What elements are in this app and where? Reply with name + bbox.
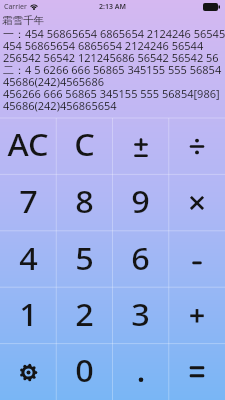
staticText: 1 [19, 294, 39, 335]
staticText: 8 [75, 181, 95, 222]
staticText: 0 [75, 350, 95, 391]
button[interactable]: 9 [113, 175, 169, 232]
staticText: 一：454 56865654 6865654 2124246 56545 454… [3, 26, 225, 113]
staticText: 2 [75, 294, 95, 335]
button[interactable]: 0 [57, 344, 113, 400]
button[interactable]: 3 [113, 288, 169, 344]
button[interactable]: 2 [57, 288, 113, 344]
button[interactable] [0, 344, 57, 400]
button[interactable] [113, 344, 169, 400]
button[interactable] [169, 344, 225, 400]
staticText: 霜雪千年 [2, 14, 44, 27]
staticText: 3 [131, 294, 151, 335]
button[interactable] [169, 232, 225, 288]
button[interactable]: 1 [0, 288, 57, 344]
button[interactable]: 6 [113, 232, 169, 288]
button[interactable] [169, 175, 225, 232]
staticText: 7 [19, 181, 39, 222]
button[interactable]: C [57, 118, 113, 175]
button[interactable] [169, 118, 225, 175]
button[interactable]: 8 [57, 175, 113, 232]
button[interactable]: 5 [57, 232, 113, 288]
staticText: Carrier [4, 2, 27, 12]
button[interactable]: 4 [0, 232, 57, 288]
button[interactable]: AC [0, 118, 57, 175]
button[interactable] [113, 118, 169, 175]
staticText: AC [7, 124, 49, 165]
staticText: 9 [131, 181, 151, 222]
button[interactable]: 7 [0, 175, 57, 232]
staticText: 4 [19, 238, 39, 279]
staticText: C [74, 124, 96, 165]
staticText: 6 [131, 238, 151, 279]
staticText: 2:13 AM [99, 2, 126, 12]
button[interactable] [169, 288, 225, 344]
staticText: 5 [75, 238, 95, 279]
